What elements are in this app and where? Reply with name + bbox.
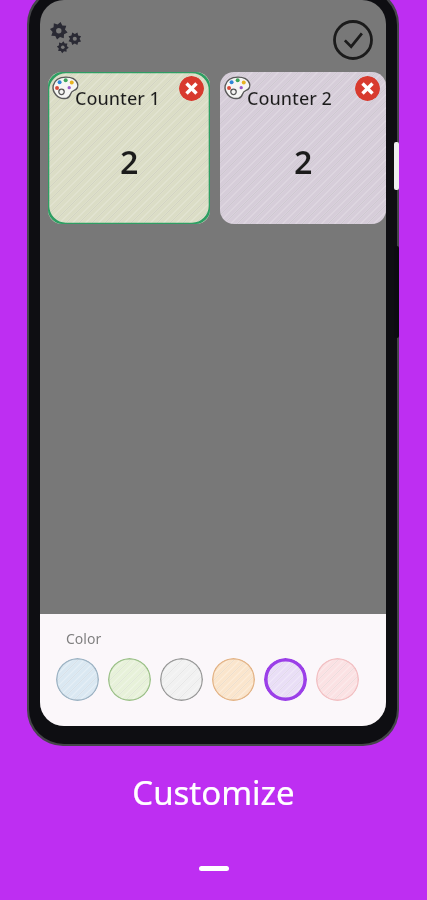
button[interactable]: Purple <box>264 658 307 701</box>
button[interactable]: Settings <box>46 20 86 60</box>
button[interactable]: Green <box>108 658 151 701</box>
button[interactable]: Gray <box>160 658 203 701</box>
button[interactable]: Delete counter <box>179 76 204 101</box>
button[interactable]: Counter 1 <box>48 72 210 224</box>
staticText: Counter 1 <box>75 86 160 111</box>
button[interactable]: Change color <box>50 72 82 104</box>
button[interactable]: Counter 2 <box>220 72 386 224</box>
staticText: Customize <box>0 770 427 815</box>
button[interactable]: Change color <box>222 72 254 104</box>
button[interactable]: Done <box>332 19 374 61</box>
button[interactable]: Delete counter <box>355 76 380 101</box>
staticText: Counter 2 <box>247 86 332 111</box>
staticText: 2 <box>294 140 313 184</box>
staticText: 2 <box>120 140 139 184</box>
button[interactable]: Orange <box>212 658 255 701</box>
button[interactable]: Pink <box>316 658 359 701</box>
button[interactable]: Blue <box>56 658 99 701</box>
staticText: Color <box>66 629 102 648</box>
